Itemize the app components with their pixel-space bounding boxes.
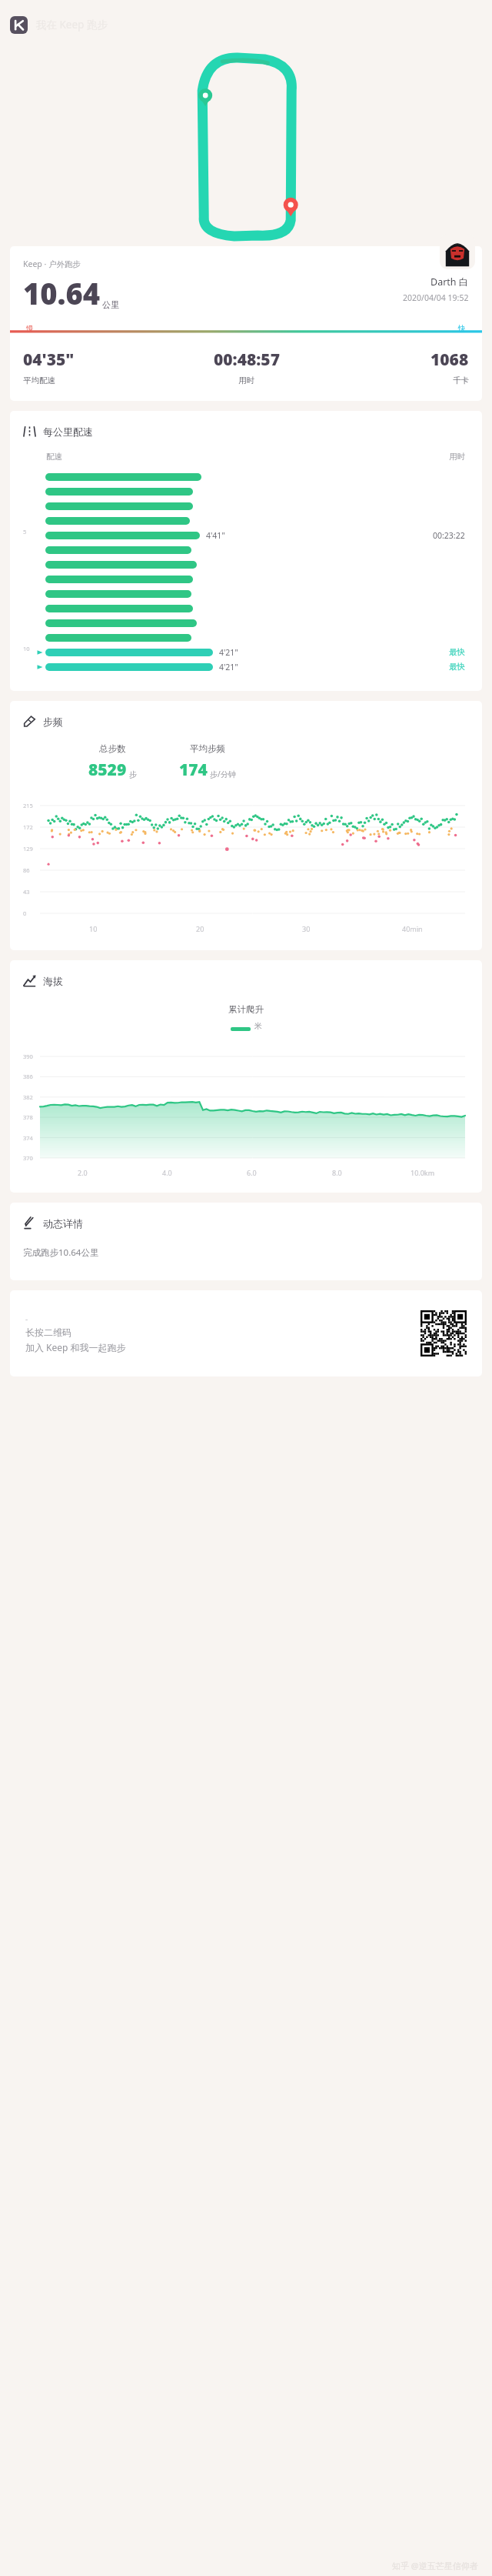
staticText: 海拔: [43, 975, 63, 987]
staticText: 平均配速: [23, 375, 55, 385]
staticText: 4'21": [219, 662, 238, 672]
staticText: 172: [23, 823, 33, 831]
button[interactable]: Keep: [10, 16, 28, 34]
button[interactable]: User avatar: [440, 234, 475, 269]
staticText: 动态详情: [43, 1217, 83, 1230]
staticText: 总步数: [99, 743, 126, 754]
staticText: 215: [23, 802, 33, 809]
staticText: Darth 白: [430, 275, 469, 289]
staticText: 4.0: [162, 1168, 172, 1177]
staticText: 步/分钟: [210, 769, 236, 779]
staticText: 加入 Keep 和我一起跑步: [25, 1341, 126, 1353]
button[interactable]: 海拔: [23, 974, 482, 987]
staticText: 386: [23, 1073, 33, 1080]
staticText: 129: [23, 845, 33, 853]
staticText: 米: [254, 1021, 262, 1031]
staticText: 10.0km: [411, 1168, 435, 1177]
staticText: 2020/04/04 19:52: [403, 292, 469, 303]
staticText: 10: [23, 645, 30, 652]
other: QR code: [421, 1310, 467, 1356]
staticText: 步: [129, 769, 137, 779]
staticText: 10.64: [23, 273, 101, 313]
staticText: 00:23:22: [433, 530, 465, 541]
staticText: 43: [23, 888, 30, 896]
staticText: 公里: [102, 299, 119, 310]
staticText: 5: [23, 528, 27, 536]
button[interactable]: 动态详情: [23, 1216, 482, 1230]
staticText: 174: [179, 759, 208, 781]
button[interactable]: 每公里配速: [23, 425, 482, 438]
staticText: 6.0: [247, 1168, 257, 1177]
staticText: 千卡: [453, 375, 469, 385]
staticText: -: [25, 1313, 28, 1324]
staticText: 8.0: [332, 1168, 342, 1177]
staticText: 4'21": [219, 647, 238, 658]
staticText: 00:48:57: [214, 349, 280, 371]
staticText: 4'41": [206, 530, 225, 541]
staticText: 我在 Keep 跑步: [36, 18, 108, 32]
staticText: 每公里配速: [43, 425, 93, 438]
staticText: 370: [23, 1154, 33, 1162]
staticText: 8529: [88, 759, 127, 781]
staticText: 40min: [402, 924, 423, 933]
staticText: 快: [458, 324, 466, 333]
staticText: Keep · 户外跑步: [23, 259, 81, 269]
staticText: 30: [302, 924, 311, 933]
staticText: 平均步频: [190, 743, 225, 754]
staticText: 最快: [449, 662, 465, 672]
staticText: 20: [196, 924, 204, 933]
button[interactable]: 步频: [23, 715, 482, 728]
staticText: 配速: [46, 452, 62, 462]
staticText: 04'35": [23, 349, 75, 371]
staticText: 86: [23, 866, 30, 874]
staticText: 0: [23, 909, 27, 917]
staticText: 累计爬升: [228, 1004, 264, 1015]
staticText: 374: [23, 1134, 33, 1142]
staticText: 390: [23, 1053, 33, 1060]
staticText: 378: [23, 1113, 33, 1121]
staticText: 1068: [430, 349, 469, 371]
button[interactable]: -: [10, 1290, 482, 1376]
staticText: 步频: [43, 716, 63, 728]
staticText: 慢: [26, 324, 34, 333]
staticText: 382: [23, 1093, 33, 1101]
staticText: 完成跑步10.64公里: [23, 1246, 99, 1259]
staticText: 2.0: [78, 1168, 88, 1177]
staticText: 用时: [449, 452, 465, 462]
staticText: 最快: [449, 647, 465, 657]
staticText: 长按二维码: [25, 1326, 71, 1338]
staticText: 10: [89, 924, 98, 933]
staticText: 知乎 @逆五芒星信仰者: [392, 2560, 478, 2571]
staticText: 用时: [238, 375, 254, 385]
